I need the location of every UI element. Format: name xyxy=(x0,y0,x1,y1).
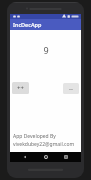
staticText: vivekdubey22@gmail.com xyxy=(13,141,75,148)
button[interactable]: -- xyxy=(63,83,79,94)
staticText: ++ xyxy=(17,84,24,92)
button[interactable]: ++ xyxy=(12,82,29,94)
staticText: App Developed By xyxy=(13,133,56,140)
staticText: -- xyxy=(69,85,73,93)
button[interactable]: Back xyxy=(20,152,30,162)
button[interactable]: Home xyxy=(41,152,51,162)
button[interactable]: Recent apps xyxy=(61,152,71,162)
staticText: 9 xyxy=(43,44,49,56)
staticText: IncDecApp xyxy=(13,21,42,28)
